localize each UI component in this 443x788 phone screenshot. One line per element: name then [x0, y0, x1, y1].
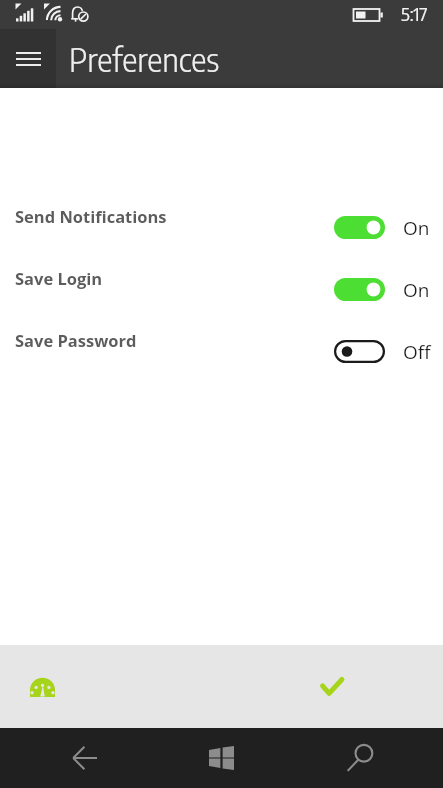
staticText: Send Notifications	[15, 205, 167, 227]
staticText: On	[403, 277, 430, 303]
staticText: Save Login	[15, 267, 103, 289]
button[interactable]: Open navigation menu	[0, 29, 56, 88]
button[interactable]: Save Password	[0, 329, 443, 367]
button[interactable]: Back	[40, 728, 128, 788]
button[interactable]: Dashboard	[0, 645, 84, 728]
staticText: On	[403, 215, 430, 241]
staticText: 5:17	[401, 2, 428, 24]
staticText: Off	[403, 339, 431, 365]
button[interactable]: Home	[177, 728, 265, 788]
staticText: Preferences	[69, 39, 220, 79]
button[interactable]: Accept	[290, 645, 374, 728]
button[interactable]: Search	[316, 728, 404, 788]
button[interactable]: Send Notifications	[0, 205, 443, 243]
button[interactable]: Save Login	[0, 267, 443, 305]
staticText: Save Password	[15, 329, 137, 351]
